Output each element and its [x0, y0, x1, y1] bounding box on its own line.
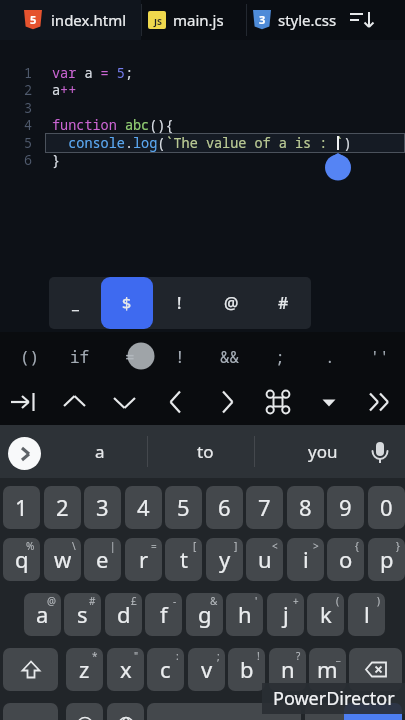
button[interactable]: # — [64, 593, 101, 636]
button[interactable]: £ — [105, 593, 142, 636]
button[interactable]: ?123 — [3, 703, 58, 720]
button[interactable]: JS — [142, 0, 246, 40]
button[interactable] — [50, 378, 100, 425]
staticText: - — [173, 594, 177, 608]
staticText: index.html — [51, 10, 127, 30]
button[interactable] — [349, 648, 402, 691]
button[interactable]: 8 — [287, 486, 324, 529]
button[interactable]: you — [278, 425, 368, 478]
staticText: > — [313, 539, 319, 553]
button[interactable]: ; — [188, 648, 225, 691]
staticText: # — [89, 594, 96, 608]
button[interactable]: '' — [355, 338, 405, 376]
button[interactable]: : — [147, 648, 184, 691]
button[interactable] — [3, 648, 58, 691]
button[interactable]: ! — [153, 277, 205, 329]
button[interactable]: { — [327, 538, 364, 581]
button[interactable] — [107, 703, 144, 720]
staticText: & — [210, 594, 218, 608]
staticText: PowerDirector — [273, 686, 395, 711]
button[interactable]: ) — [348, 593, 385, 636]
button[interactable]: - — [145, 593, 182, 636]
button[interactable]: 7 — [246, 486, 283, 529]
button[interactable]: 4 — [125, 486, 162, 529]
staticText: o — [339, 544, 353, 574]
button[interactable] — [66, 703, 103, 720]
staticText: g — [198, 599, 212, 629]
button[interactable]: 5 — [0, 0, 141, 40]
button[interactable]: @ — [205, 277, 257, 329]
button[interactable]: 3 — [247, 0, 345, 40]
button[interactable]: 0 — [368, 486, 405, 529]
button[interactable]: } — [368, 538, 405, 581]
staticText: 5 — [24, 134, 33, 152]
button[interactable]: ' — [226, 593, 263, 636]
button[interactable]: 6 — [206, 486, 243, 529]
button[interactable] — [147, 703, 301, 720]
button[interactable]: [ — [165, 538, 202, 581]
button[interactable]: | — [84, 538, 121, 581]
button[interactable]: to — [160, 425, 250, 478]
button[interactable]: < — [246, 538, 283, 581]
staticText: 8 — [299, 492, 312, 522]
staticText: v — [201, 654, 213, 684]
button[interactable]: . — [305, 338, 355, 376]
staticText: e — [96, 544, 109, 574]
button[interactable]: * — [66, 648, 103, 691]
button[interactable] — [8, 437, 41, 470]
button[interactable]: + — [267, 593, 304, 636]
button[interactable] — [201, 378, 252, 425]
button[interactable]: $ — [101, 277, 153, 329]
button[interactable]: ! — [155, 338, 205, 376]
button[interactable] — [343, 4, 383, 36]
button[interactable]: . — [305, 703, 345, 720]
button[interactable]: _ — [309, 648, 346, 691]
staticText: + — [293, 594, 299, 608]
staticText: 5 — [177, 492, 190, 522]
button[interactable]: 9 — [327, 486, 364, 529]
staticText: ; — [275, 346, 285, 368]
button[interactable] — [344, 703, 402, 720]
button[interactable]: 1 — [3, 486, 40, 529]
button[interactable]: if — [55, 338, 105, 376]
button[interactable]: && — [205, 338, 255, 376]
button[interactable]: # — [257, 277, 309, 329]
button[interactable]: & — [186, 593, 223, 636]
button[interactable]: " — [107, 648, 144, 691]
staticText: y — [219, 544, 231, 574]
staticText: = — [151, 539, 157, 553]
button[interactable]: @ — [24, 593, 61, 636]
button[interactable]: \ — [44, 538, 81, 581]
staticText: < — [272, 539, 278, 553]
button[interactable]: _ — [49, 277, 101, 329]
button[interactable] — [0, 378, 50, 425]
button[interactable]: ; — [255, 338, 305, 376]
button[interactable]: 5 — [165, 486, 202, 529]
button[interactable]: 2 — [44, 486, 81, 529]
button[interactable] — [303, 378, 354, 425]
button[interactable]: a — [55, 425, 145, 478]
button[interactable]: = — [105, 338, 155, 376]
button[interactable] — [354, 378, 405, 425]
button[interactable]: ! — [228, 648, 265, 691]
staticText: _ — [72, 292, 79, 314]
staticText: function abc(){ — [52, 116, 174, 134]
button[interactable] — [100, 378, 150, 425]
button[interactable] — [150, 378, 201, 425]
button[interactable]: 3 — [84, 486, 121, 529]
button[interactable]: > — [287, 538, 324, 581]
button[interactable]: () — [5, 338, 55, 376]
staticText: 9 — [339, 492, 352, 522]
button[interactable] — [360, 425, 400, 478]
staticText: } — [52, 151, 61, 169]
staticText: s — [77, 599, 88, 629]
staticText: p — [380, 544, 394, 574]
button[interactable]: % — [3, 538, 40, 581]
staticText: @ — [47, 594, 56, 608]
button[interactable]: = — [125, 538, 162, 581]
button[interactable]: ] — [206, 538, 243, 581]
button[interactable]: ? — [269, 648, 306, 691]
button[interactable]: ( — [307, 593, 344, 636]
button[interactable] — [252, 378, 303, 425]
